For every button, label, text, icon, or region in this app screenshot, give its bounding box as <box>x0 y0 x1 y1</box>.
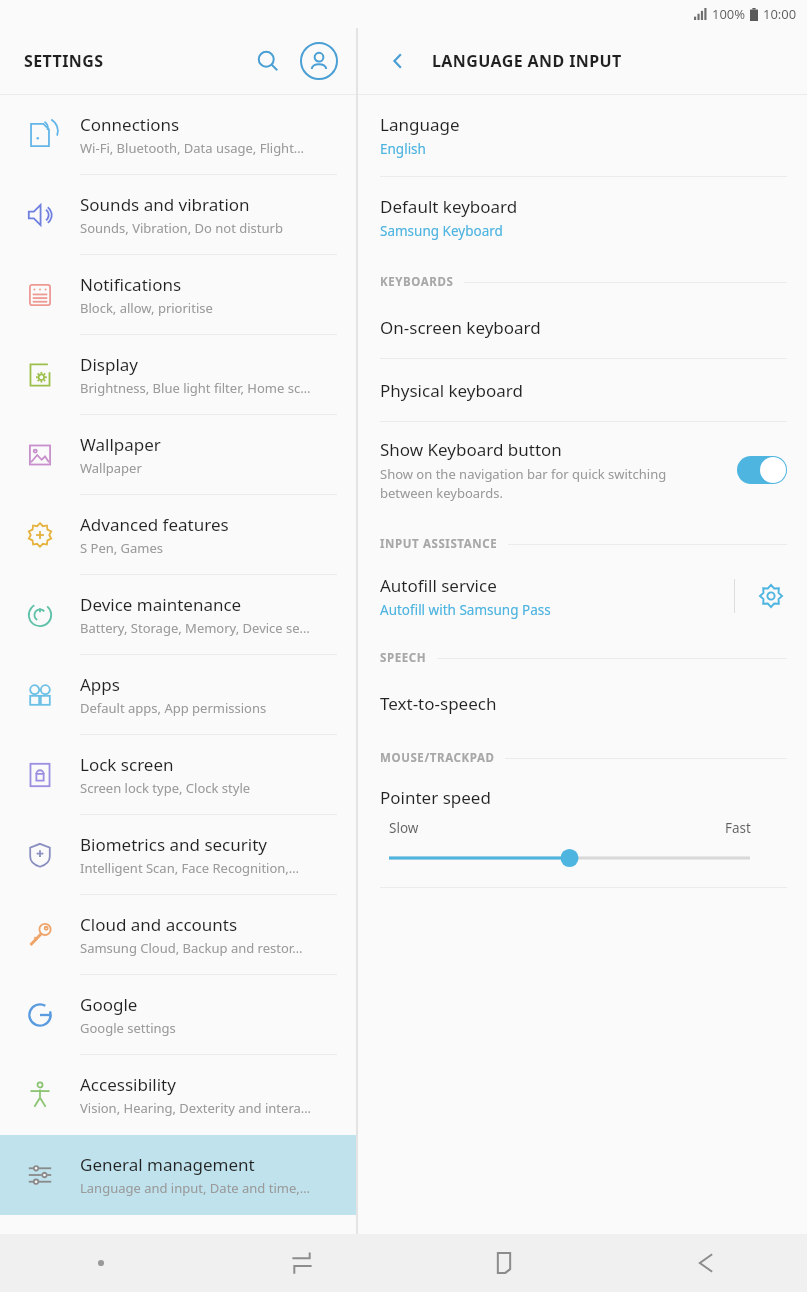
staticText: Google <box>80 993 138 1016</box>
button[interactable]: Connections <box>0 95 356 175</box>
staticText: Default keyboard <box>380 195 518 218</box>
button[interactable]: On-screen keyboard <box>358 296 807 358</box>
button[interactable]: Apps <box>0 655 356 735</box>
staticText: English <box>380 140 426 158</box>
button[interactable]: Text-to-speech <box>358 672 807 734</box>
staticText: Samsung Cloud, Backup and restor… <box>80 939 303 957</box>
staticText: Brightness, Blue light filter, Home sc… <box>80 379 311 397</box>
staticText: Slow <box>389 819 419 837</box>
button[interactable]: Language <box>358 95 807 176</box>
staticText: Wallpaper <box>80 433 161 456</box>
staticText: Language <box>380 113 460 136</box>
button[interactable]: Recents <box>201 1234 403 1292</box>
button[interactable]: Show Keyboard button <box>358 422 807 520</box>
staticText: Wallpaper <box>80 459 142 477</box>
staticText: Device maintenance <box>80 593 242 616</box>
staticText: Screen lock type, Clock style <box>80 779 251 797</box>
staticText: Fast <box>725 819 751 837</box>
button[interactable]: Default keyboard <box>358 177 807 258</box>
staticText: 10:00 <box>763 5 797 23</box>
staticText: Default apps, App permissions <box>80 699 267 717</box>
staticText: Intelligent Scan, Face Recognition,… <box>80 859 300 877</box>
staticText: General management <box>80 1153 255 1176</box>
button[interactable]: Account <box>296 38 342 84</box>
button[interactable]: Sounds and vibration <box>0 175 356 255</box>
button[interactable]: Advanced features <box>0 495 356 575</box>
button[interactable]: Show Keyboard button toggle <box>737 456 787 484</box>
button[interactable]: Lock screen <box>0 735 356 815</box>
button[interactable]: Google <box>0 975 356 1055</box>
button[interactable]: Device maintenance <box>0 575 356 655</box>
button[interactable]: Notifications <box>0 255 356 335</box>
button[interactable]: Autofill service <box>358 558 734 634</box>
staticText: MOUSE/TRACKPAD <box>380 750 495 766</box>
staticText: Show Keyboard button <box>380 438 562 461</box>
staticText: SETTINGS <box>24 50 104 72</box>
staticText: KEYBOARDS <box>380 274 454 290</box>
button[interactable]: General management <box>0 1135 356 1215</box>
button[interactable]: Physical keyboard <box>358 359 807 421</box>
staticText: Display <box>80 353 138 376</box>
staticText: Autofill with Samsung Pass <box>380 601 551 619</box>
button[interactable]: Accessibility <box>0 1055 356 1135</box>
staticText: LANGUAGE AND INPUT <box>432 50 622 72</box>
staticText: Sounds, Vibration, Do not disturb <box>80 219 283 237</box>
staticText: Advanced features <box>80 513 229 536</box>
staticText: Notifications <box>80 273 182 296</box>
staticText: 100% <box>712 5 746 23</box>
staticText: Block, allow, prioritise <box>80 299 213 317</box>
button[interactable]: Pointer speed <box>358 772 807 887</box>
staticText: Lock screen <box>80 753 174 776</box>
staticText: Google settings <box>80 1019 176 1037</box>
staticText: Autofill service <box>380 574 497 597</box>
button[interactable]: Autofill settings <box>735 558 807 634</box>
button[interactable]: Back <box>605 1234 807 1292</box>
staticText: On-screen keyboard <box>380 316 541 339</box>
staticText: Language and input, Date and time,… <box>80 1179 311 1197</box>
button[interactable]: Display <box>0 335 356 415</box>
staticText: Pointer speed <box>380 786 491 809</box>
button[interactable]: Home <box>403 1234 605 1292</box>
button[interactable]: Search <box>246 39 290 83</box>
button[interactable]: Cloud and accounts <box>0 895 356 975</box>
staticText: Battery, Storage, Memory, Device se… <box>80 619 310 637</box>
staticText: Physical keyboard <box>380 379 523 402</box>
staticText: Vision, Hearing, Dexterity and intera… <box>80 1099 312 1117</box>
staticText: INPUT ASSISTANCE <box>380 536 498 552</box>
staticText: S Pen, Games <box>80 539 164 557</box>
staticText: Wi-Fi, Bluetooth, Data usage, Flight… <box>80 139 305 157</box>
button[interactable]: Wallpaper <box>0 415 356 495</box>
button[interactable]: Back <box>376 39 420 83</box>
staticText: Connections <box>80 113 180 136</box>
staticText: SPEECH <box>380 650 427 666</box>
staticText: Text-to-speech <box>380 692 497 715</box>
staticText: Cloud and accounts <box>80 913 238 936</box>
staticText: Apps <box>80 673 120 696</box>
staticText: Accessibility <box>80 1073 176 1096</box>
staticText: Biometrics and security <box>80 833 267 856</box>
staticText: Sounds and vibration <box>80 193 250 216</box>
staticText: Samsung Keyboard <box>380 222 503 240</box>
staticText: Show on the navigation bar for quick swi… <box>380 465 721 502</box>
button[interactable]: Biometrics and security <box>0 815 356 895</box>
